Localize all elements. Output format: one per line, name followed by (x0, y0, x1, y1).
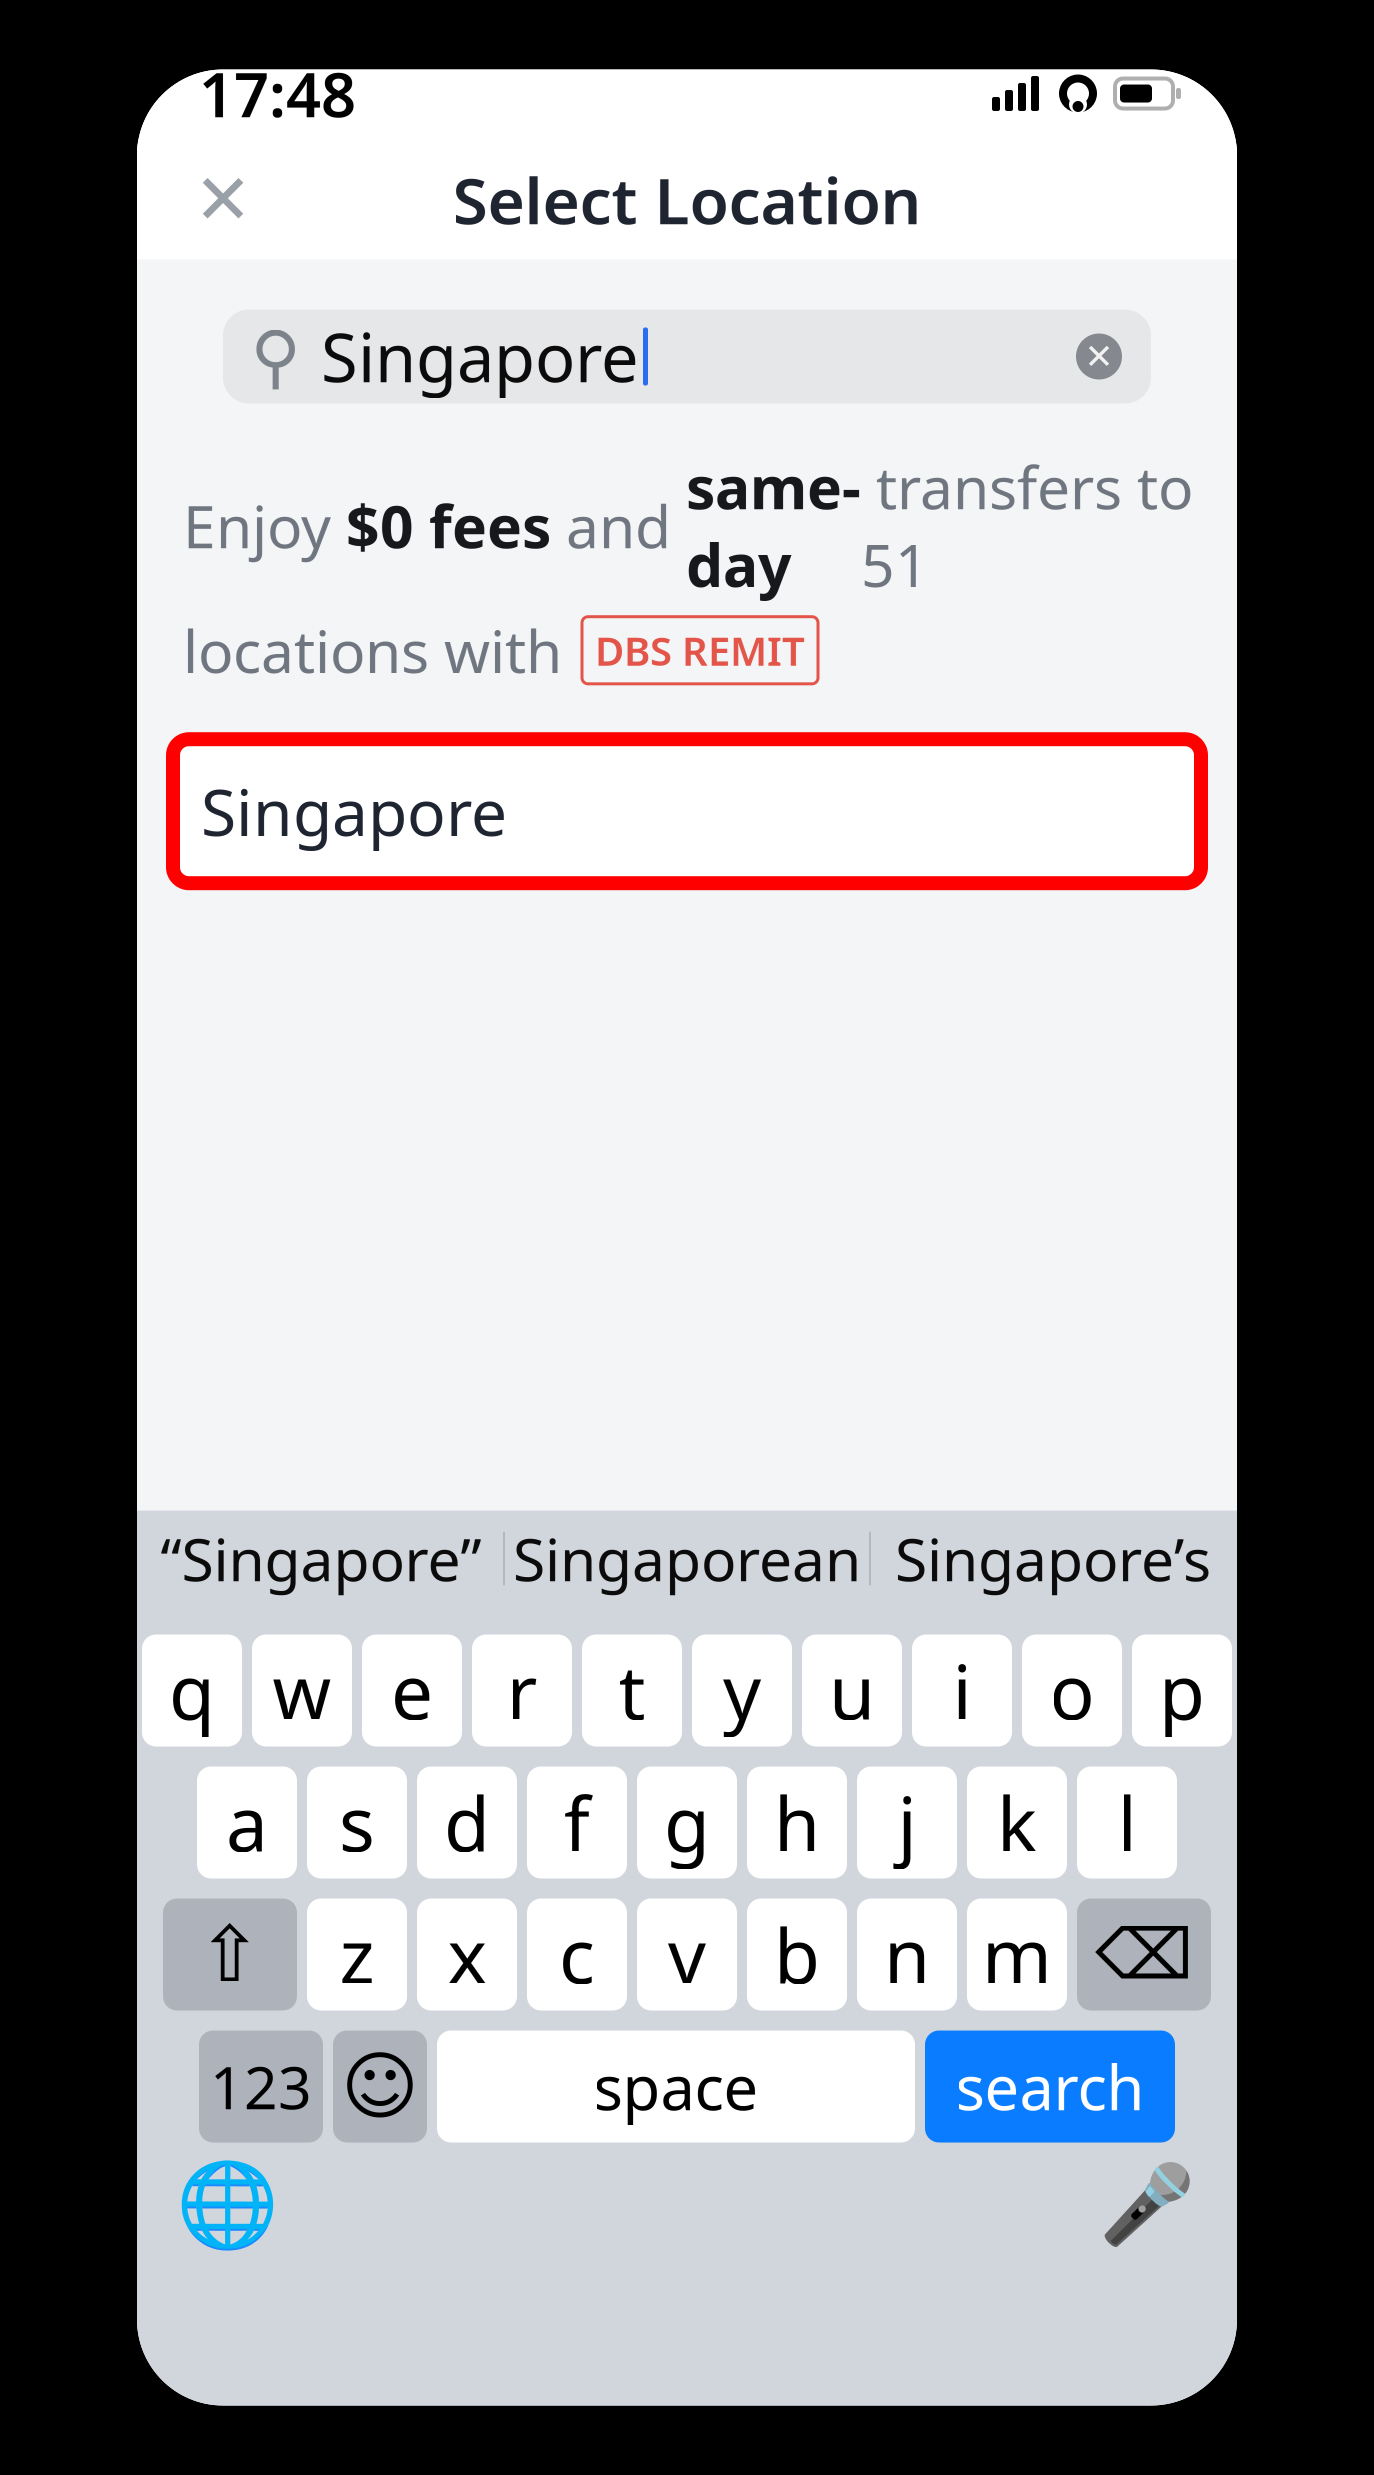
staticText: h (774, 1773, 820, 1872)
button[interactable]: Next keyboard (179, 2156, 275, 2252)
button[interactable]: y (692, 1634, 792, 1746)
staticText: ✕ (1084, 337, 1113, 376)
button[interactable]: Numbers (199, 2030, 323, 2142)
staticText: r (506, 1641, 537, 1740)
staticText: 🎤 (1099, 2160, 1195, 2249)
button[interactable]: Singaporean (505, 1510, 869, 1606)
staticText: n (884, 1905, 930, 2004)
staticText: v (668, 1905, 706, 2004)
staticText: same-day (686, 447, 861, 603)
button[interactable]: p (1132, 1634, 1232, 1746)
staticText: transfers to 51 (861, 447, 1193, 603)
staticText: Select Location (452, 157, 921, 242)
staticText: ⚲ (250, 317, 301, 396)
staticText: 🌐 (175, 2157, 278, 2252)
staticText: DBS REMIT (595, 624, 805, 677)
staticText: Singapore (321, 312, 639, 401)
staticText: g (664, 1773, 710, 1872)
staticText: o (1049, 1641, 1094, 1740)
staticText: Singapore (201, 769, 507, 854)
staticText: 17:48 (199, 53, 356, 134)
button[interactable]: t (582, 1634, 682, 1746)
button[interactable]: a (197, 1766, 297, 1878)
staticText: and (551, 486, 686, 564)
staticText: l (1117, 1773, 1136, 1872)
staticText: ⌫ (1095, 1915, 1193, 1994)
staticText: ⇧ (197, 1911, 262, 1998)
staticText: w (272, 1641, 331, 1740)
button[interactable]: u (802, 1634, 902, 1746)
staticText: 123 (210, 2047, 312, 2125)
staticText: “Singapore” (160, 1519, 481, 1597)
button[interactable]: search (925, 2030, 1175, 2142)
staticText: k (997, 1773, 1037, 1872)
staticText: Enjoy (183, 486, 346, 564)
button[interactable]: Shift (163, 1898, 297, 2010)
button[interactable]: f (527, 1766, 627, 1878)
button[interactable]: g (637, 1766, 737, 1878)
staticText: i (952, 1641, 971, 1740)
staticText: f (564, 1773, 590, 1872)
button[interactable]: Emoji (333, 2030, 427, 2142)
staticText: e (391, 1641, 433, 1740)
button[interactable]: Singapore (173, 739, 1201, 883)
button[interactable]: Dictation (1099, 2156, 1195, 2252)
button[interactable]: q (142, 1634, 242, 1746)
button[interactable]: k (967, 1766, 1067, 1878)
button[interactable]: s (307, 1766, 407, 1878)
staticText: z (339, 1905, 374, 2004)
staticText: a (226, 1773, 268, 1872)
button[interactable]: r (472, 1634, 572, 1746)
staticText: d (444, 1773, 490, 1872)
staticText: b (774, 1905, 820, 2004)
button[interactable]: j (857, 1766, 957, 1878)
button[interactable]: d (417, 1766, 517, 1878)
staticText: space (593, 2046, 758, 2127)
staticText: t (618, 1641, 645, 1740)
staticText: u (829, 1641, 875, 1740)
staticText: ✕ (194, 160, 252, 239)
button[interactable]: m (967, 1898, 1067, 2010)
button[interactable]: v (637, 1898, 737, 2010)
button[interactable]: o (1022, 1634, 1122, 1746)
button[interactable]: x (417, 1898, 517, 2010)
staticText: p (1159, 1641, 1205, 1740)
staticText: ☺ (341, 2044, 419, 2129)
button[interactable]: n (857, 1898, 957, 2010)
button[interactable]: “Singapore” (139, 1510, 503, 1606)
button[interactable]: c (527, 1898, 627, 2010)
button[interactable]: b (747, 1898, 847, 2010)
staticText: j (897, 1773, 916, 1872)
button[interactable]: Close (175, 144, 271, 254)
staticText: locations with (183, 611, 562, 689)
staticText: search (955, 2046, 1144, 2127)
button[interactable]: l (1077, 1766, 1177, 1878)
staticText: $0 fees (346, 486, 551, 564)
button[interactable]: Clear text (1057, 309, 1141, 403)
staticText: q (169, 1641, 215, 1740)
staticText: Singapore’s (895, 1519, 1211, 1597)
button[interactable]: h (747, 1766, 847, 1878)
button[interactable]: z (307, 1898, 407, 2010)
staticText: c (559, 1905, 595, 2004)
button[interactable]: Delete (1077, 1898, 1211, 2010)
staticText: m (982, 1905, 1052, 2004)
button[interactable]: w (252, 1634, 352, 1746)
staticText: y (723, 1641, 761, 1740)
button[interactable]: space (437, 2030, 915, 2142)
button[interactable]: i (912, 1634, 1012, 1746)
button[interactable]: Singapore’s (871, 1510, 1235, 1606)
staticText: Singaporean (513, 1519, 861, 1597)
staticText: s (339, 1773, 375, 1872)
button[interactable]: e (362, 1634, 462, 1746)
staticText: x (447, 1905, 486, 2004)
